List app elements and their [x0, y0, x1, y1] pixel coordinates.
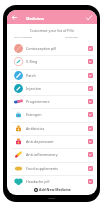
staticText: Medicines — [26, 16, 45, 21]
staticText: Show/Hide — [65, 35, 78, 38]
button[interactable]: Toggle V-Ring — [86, 57, 95, 66]
button[interactable]: V-Ring — [7, 55, 97, 68]
button[interactable]: Anti-inflammatory — [7, 148, 97, 161]
button[interactable]: Toggle Anti-inflammatory — [86, 150, 95, 159]
button[interactable]: Estrogen — [7, 108, 97, 121]
button[interactable]: Anti-depressant — [7, 135, 97, 148]
button[interactable]: Toggle Headache pill — [86, 177, 95, 186]
button[interactable]: Headache pill — [7, 175, 97, 188]
button[interactable]: Done — [84, 13, 93, 22]
staticText: Progesterone — [26, 99, 50, 104]
button[interactable]: Contraceptive pill — [7, 42, 97, 55]
staticText: Customize your list of Pills — [7, 28, 97, 33]
button[interactable]: Toggle Anti-depressant — [86, 137, 95, 146]
button[interactable]: Toggle Injection — [86, 84, 95, 93]
button[interactable]: Toggle Antibiotics — [86, 124, 95, 133]
staticText: Food supplements — [26, 166, 59, 171]
button[interactable]: Toggle Estrogen — [86, 110, 95, 119]
staticText: Antibiotics — [26, 126, 45, 131]
staticText: Estrogen — [26, 112, 42, 117]
button[interactable]: Toggle Progesterone — [86, 97, 95, 106]
button[interactable]: Food supplements — [7, 162, 97, 175]
button[interactable]: Toggle Contraceptive pill — [86, 44, 95, 53]
button[interactable]: Add New Medicine — [7, 185, 97, 194]
button[interactable]: Toggle Food supplements — [86, 164, 95, 173]
button[interactable]: Progesterone — [7, 95, 97, 108]
staticText: Add New Medicine — [39, 187, 71, 192]
staticText: Contraceptive pill — [26, 46, 57, 51]
button[interactable]: Injection — [7, 82, 97, 95]
button[interactable]: Patch — [7, 69, 97, 82]
staticText: Anti-depressant — [26, 139, 54, 144]
staticText: Headache pill — [26, 179, 50, 184]
button[interactable]: Antibiotics — [7, 122, 97, 135]
button[interactable]: Toggle Patch — [86, 71, 95, 80]
staticText: V-Ring — [26, 59, 38, 64]
staticText: Anti-inflammatory — [26, 152, 58, 157]
button[interactable]: Back — [10, 13, 19, 22]
staticText: Click to rename — [14, 35, 33, 38]
staticText: Patch — [26, 73, 36, 78]
staticText: Injection — [26, 86, 42, 91]
